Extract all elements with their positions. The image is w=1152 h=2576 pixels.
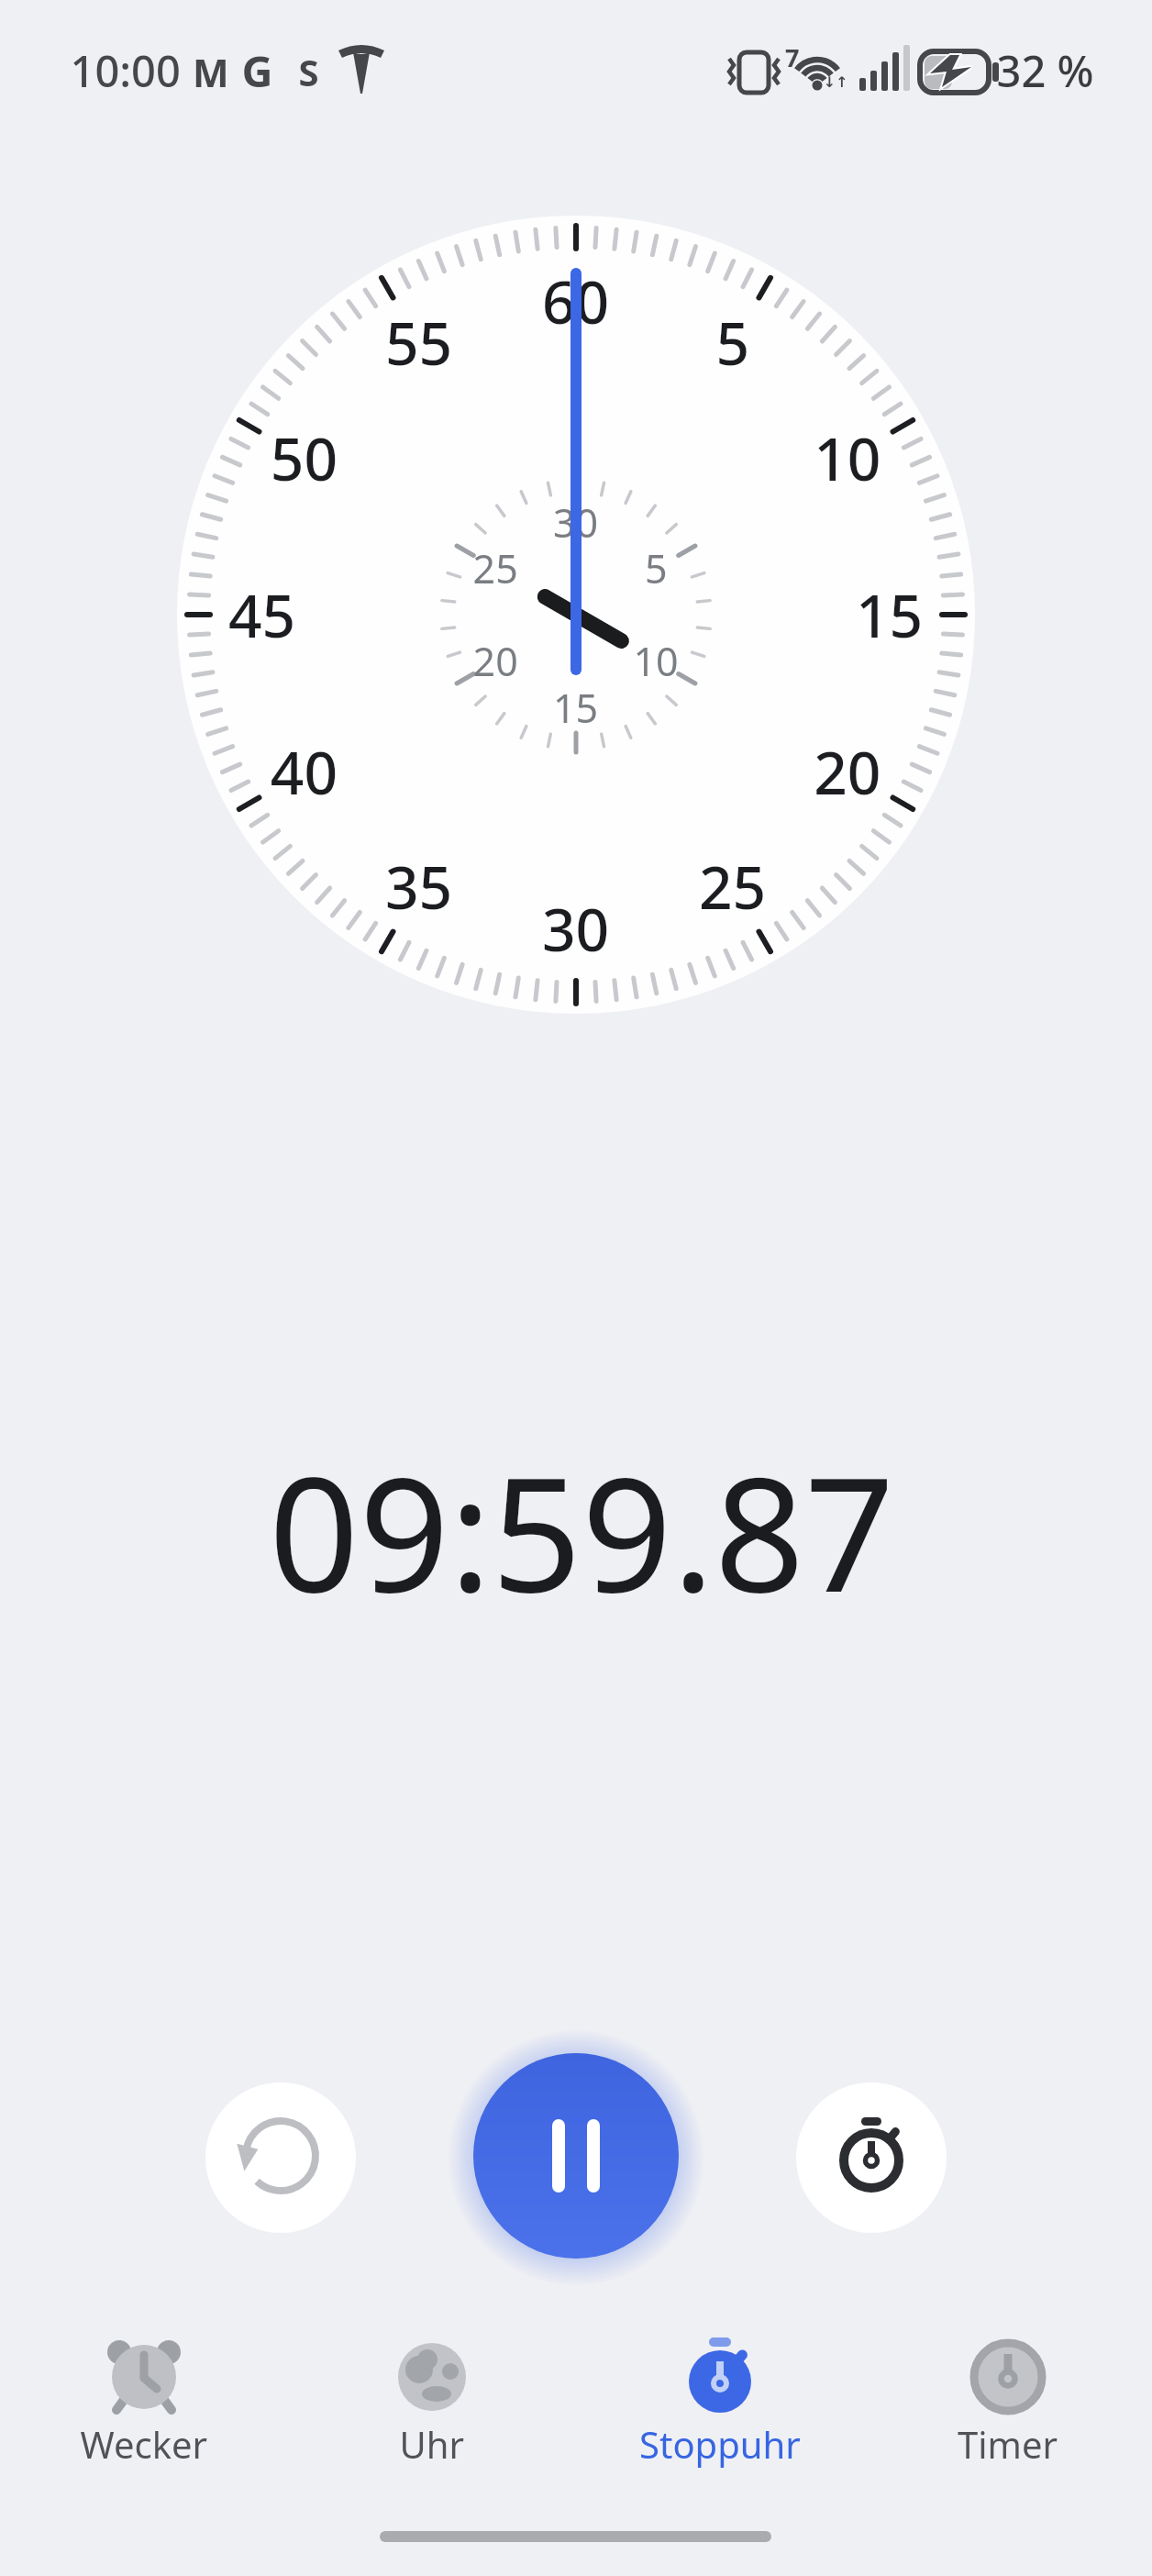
button[interactable]: [331, 2319, 533, 2480]
button[interactable]: [473, 2053, 679, 2259]
button[interactable]: [619, 2319, 821, 2480]
button[interactable]: [43, 2319, 245, 2480]
button[interactable]: [907, 2319, 1109, 2480]
button[interactable]: [796, 2082, 947, 2233]
staticText: 09:59.87: [269, 1423, 895, 1636]
button[interactable]: [205, 2082, 356, 2233]
